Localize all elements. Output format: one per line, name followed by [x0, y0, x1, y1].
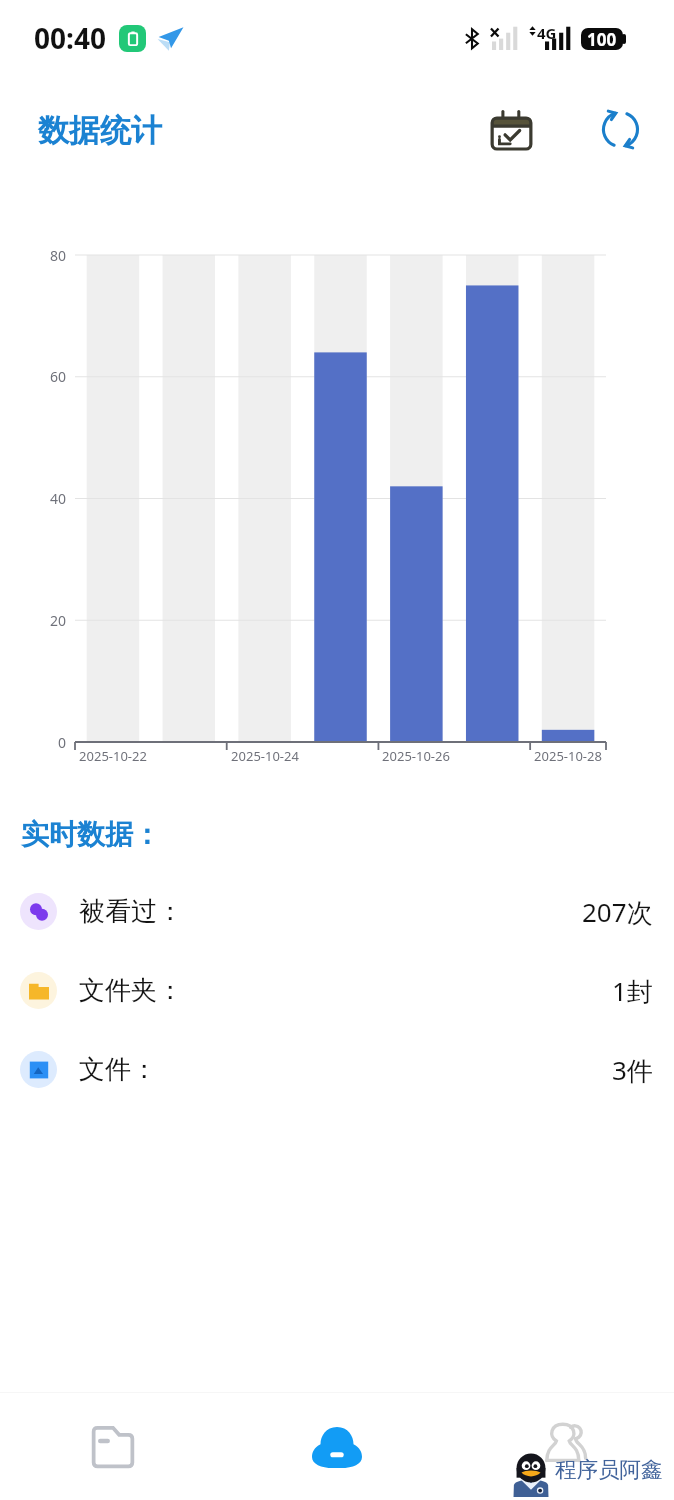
- staticText: 40: [0, 489, 66, 508]
- staticText: 0: [0, 733, 66, 752]
- staticText: 2025-10-28: [508, 747, 628, 765]
- staticText: 00:40: [34, 19, 106, 57]
- staticText: 60: [0, 367, 66, 386]
- button[interactable]: Refresh: [591, 100, 650, 159]
- staticText: 3件: [612, 1052, 653, 1088]
- button[interactable]: Profile: [544, 1421, 588, 1465]
- button[interactable]: 文件夹：: [0, 951, 674, 1030]
- staticText: 程序员阿鑫: [555, 1456, 663, 1483]
- button[interactable]: 文件：: [0, 1030, 674, 1109]
- staticText: 2025-10-22: [53, 747, 173, 765]
- staticText: 被看过：: [79, 895, 183, 928]
- staticText: 100: [587, 28, 617, 50]
- staticText: 2025-10-26: [356, 747, 476, 765]
- staticText: 80: [0, 246, 66, 265]
- staticText: 文件夹：: [79, 974, 183, 1007]
- staticText: 2025-10-24: [205, 747, 325, 765]
- button[interactable]: Pick date: [482, 101, 541, 160]
- staticText: 文件：: [79, 1053, 157, 1086]
- staticText: 实时数据：: [21, 817, 161, 852]
- button[interactable]: 被看过：: [0, 872, 674, 951]
- staticText: 数据统计: [38, 111, 162, 150]
- staticText: 207次: [582, 894, 653, 930]
- staticText: 1封: [612, 973, 653, 1009]
- button[interactable]: Cloud: [311, 1421, 363, 1473]
- staticText: 4G: [537, 23, 557, 43]
- button[interactable]: Files: [88, 1423, 138, 1473]
- staticText: 20: [0, 611, 66, 630]
